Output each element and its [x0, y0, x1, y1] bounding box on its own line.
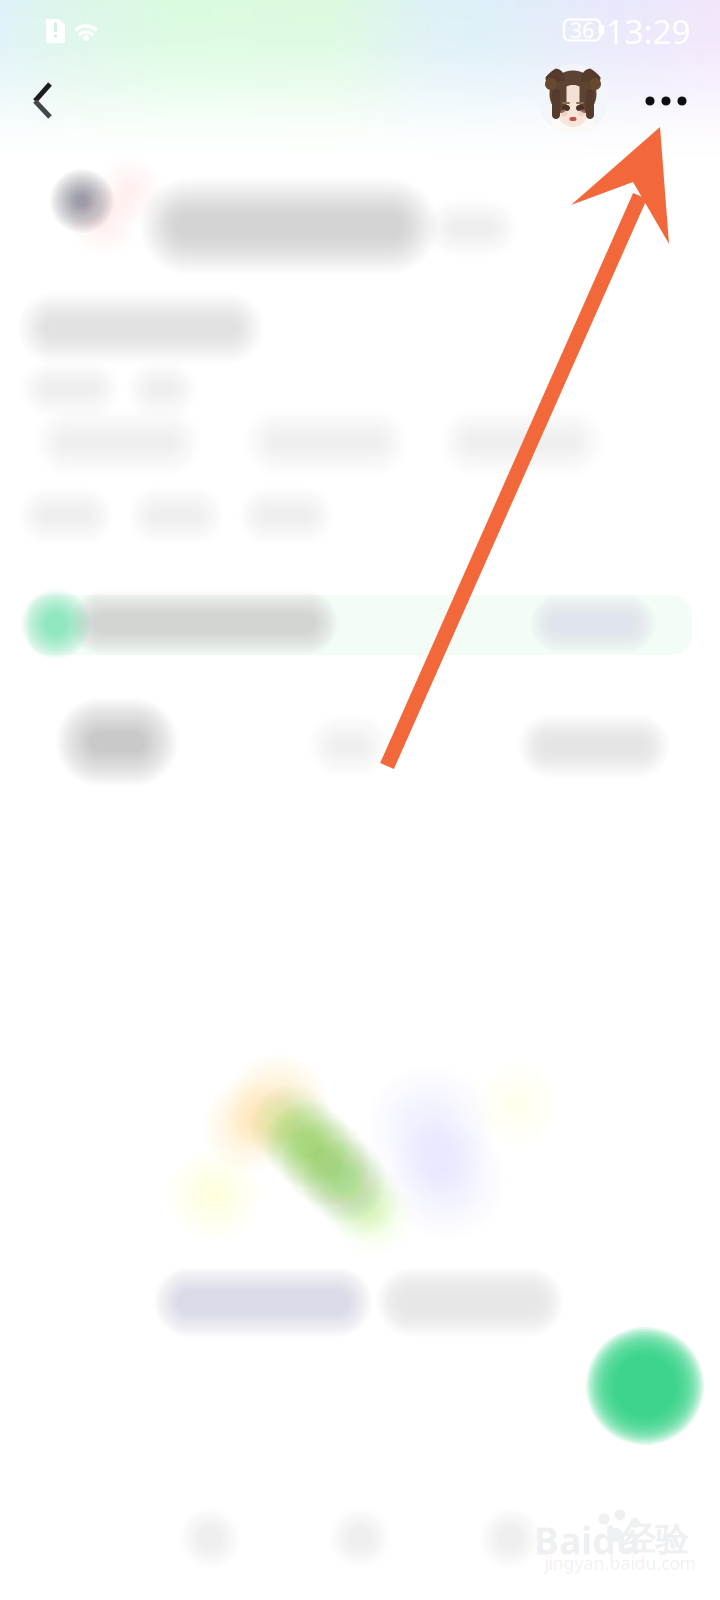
button[interactable]: Profile: [480, 1508, 540, 1568]
button[interactable]: Create post: [580, 1321, 710, 1451]
button[interactable]: Back: [15, 69, 79, 133]
button[interactable]: Profile: [538, 64, 608, 134]
staticText: jingyan.baidu.com: [544, 1551, 695, 1574]
staticText: 36: [570, 16, 594, 44]
staticText: 13:29: [605, 9, 690, 53]
button[interactable]: Discover: [330, 1508, 390, 1568]
staticText: 经验: [622, 1519, 688, 1560]
button[interactable]: Home: [180, 1508, 240, 1568]
button[interactable]: More options: [627, 69, 705, 133]
staticText: Baidu: [534, 1515, 640, 1565]
